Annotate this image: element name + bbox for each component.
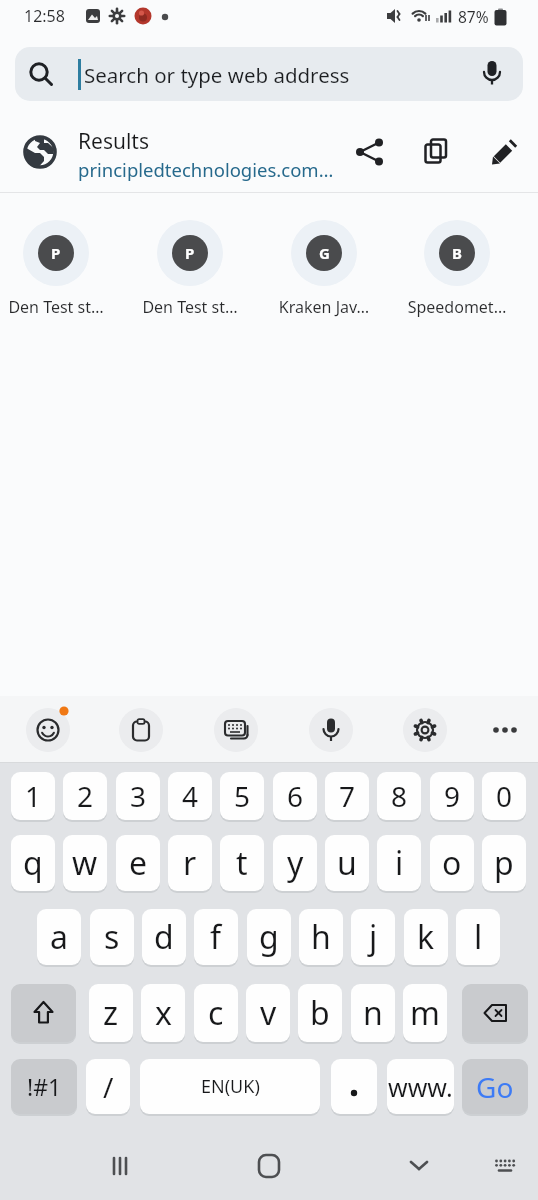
button[interactable]: !#1	[11, 1059, 77, 1114]
staticText: 6	[287, 777, 304, 815]
button[interactable]: m	[403, 984, 447, 1042]
button[interactable]: g	[247, 909, 291, 965]
staticText: Den Test st…	[0, 296, 121, 322]
staticText: m	[410, 991, 440, 1035]
button[interactable]	[119, 708, 163, 752]
staticText: principledtechnologies.com…	[78, 157, 334, 182]
button[interactable]	[331, 1059, 377, 1114]
button[interactable]: c	[194, 984, 238, 1042]
button[interactable]: z	[89, 984, 133, 1042]
button[interactable]: 2	[63, 772, 107, 820]
button[interactable]	[420, 136, 452, 168]
button[interactable]: 8	[377, 772, 421, 820]
button[interactable]: d	[142, 909, 186, 965]
button[interactable]	[106, 1152, 134, 1180]
staticText: i	[395, 841, 404, 885]
button[interactable]: t	[220, 835, 264, 891]
staticText: Kraken Jav…	[259, 296, 389, 322]
button[interactable]: w	[63, 835, 107, 891]
button[interactable]: 4	[168, 772, 212, 820]
staticText: r	[183, 841, 197, 885]
button[interactable]: P	[23, 220, 89, 286]
button[interactable]: B	[424, 220, 490, 286]
staticText: p	[494, 841, 514, 885]
staticText: g	[259, 915, 279, 959]
button[interactable]: G	[291, 220, 357, 286]
button[interactable]: f	[194, 909, 238, 965]
button[interactable]: q	[11, 835, 55, 891]
button[interactable]	[354, 136, 386, 168]
button[interactable]: 7	[325, 772, 369, 820]
button[interactable]: 3	[116, 772, 160, 820]
staticText: B	[452, 243, 462, 263]
staticText: 9	[444, 777, 461, 815]
button[interactable]: l	[456, 909, 500, 965]
button[interactable]	[15, 47, 523, 101]
button[interactable]	[490, 715, 520, 745]
staticText: Results	[78, 127, 150, 156]
button[interactable]	[214, 708, 258, 752]
staticText: 87%	[458, 6, 489, 27]
staticText: h	[311, 915, 331, 959]
button[interactable]: www.	[387, 1059, 454, 1114]
staticText: www.	[388, 1070, 453, 1104]
staticText: Go	[476, 1068, 514, 1106]
staticText: Search or type web address	[84, 61, 350, 89]
button[interactable]: u	[325, 835, 369, 891]
button[interactable]	[11, 984, 76, 1042]
button[interactable]: k	[404, 909, 448, 965]
button[interactable]: /	[86, 1059, 130, 1114]
button[interactable]: y	[273, 835, 317, 891]
staticText: 7	[339, 777, 356, 815]
button[interactable]: 1	[11, 772, 55, 820]
staticText: b	[310, 991, 330, 1035]
button[interactable]	[403, 708, 447, 752]
staticText: 8	[391, 777, 408, 815]
button[interactable]: EN(UK)	[140, 1059, 320, 1114]
staticText: 2	[77, 777, 94, 815]
staticText: 5	[234, 777, 251, 815]
button[interactable]: 0	[482, 772, 526, 820]
staticText: v	[260, 991, 277, 1035]
staticText: s	[104, 915, 120, 959]
staticText: Speedomet…	[392, 296, 522, 322]
staticText: c	[208, 991, 224, 1035]
button[interactable]: h	[299, 909, 343, 965]
staticText: j	[369, 915, 378, 959]
button[interactable]: r	[168, 835, 212, 891]
button[interactable]: 6	[273, 772, 317, 820]
button[interactable]: 9	[430, 772, 474, 820]
button[interactable]: Go	[462, 1059, 528, 1114]
button[interactable]: s	[90, 909, 134, 965]
staticText: o	[442, 841, 462, 885]
button[interactable]: n	[351, 984, 395, 1042]
button[interactable]	[309, 708, 353, 752]
button[interactable]	[405, 1151, 433, 1179]
staticText: w	[72, 841, 98, 885]
button[interactable]: o	[430, 835, 474, 891]
button[interactable]: 5	[220, 772, 264, 820]
button[interactable]	[488, 136, 520, 168]
button[interactable]: j	[351, 909, 395, 965]
button[interactable]: a	[37, 909, 81, 965]
button[interactable]: P	[157, 220, 223, 286]
button[interactable]	[26, 708, 70, 752]
staticText: !#1	[27, 1071, 62, 1102]
button[interactable]: v	[246, 984, 290, 1042]
button[interactable]: i	[377, 835, 421, 891]
button[interactable]: p	[482, 835, 526, 891]
staticText: k	[417, 915, 435, 959]
staticText: G	[319, 243, 330, 263]
button[interactable]	[0, 112, 538, 192]
button[interactable]: e	[116, 835, 160, 891]
button[interactable]: b	[298, 984, 342, 1042]
staticText: P	[51, 243, 61, 263]
button[interactable]	[462, 984, 528, 1042]
staticText: x	[155, 991, 172, 1035]
staticText: EN(UK)	[201, 1074, 260, 1099]
button[interactable]	[491, 1152, 519, 1180]
button[interactable]: x	[141, 984, 185, 1042]
staticText: q	[23, 841, 43, 885]
staticText: y	[287, 841, 304, 885]
button[interactable]	[255, 1152, 283, 1180]
